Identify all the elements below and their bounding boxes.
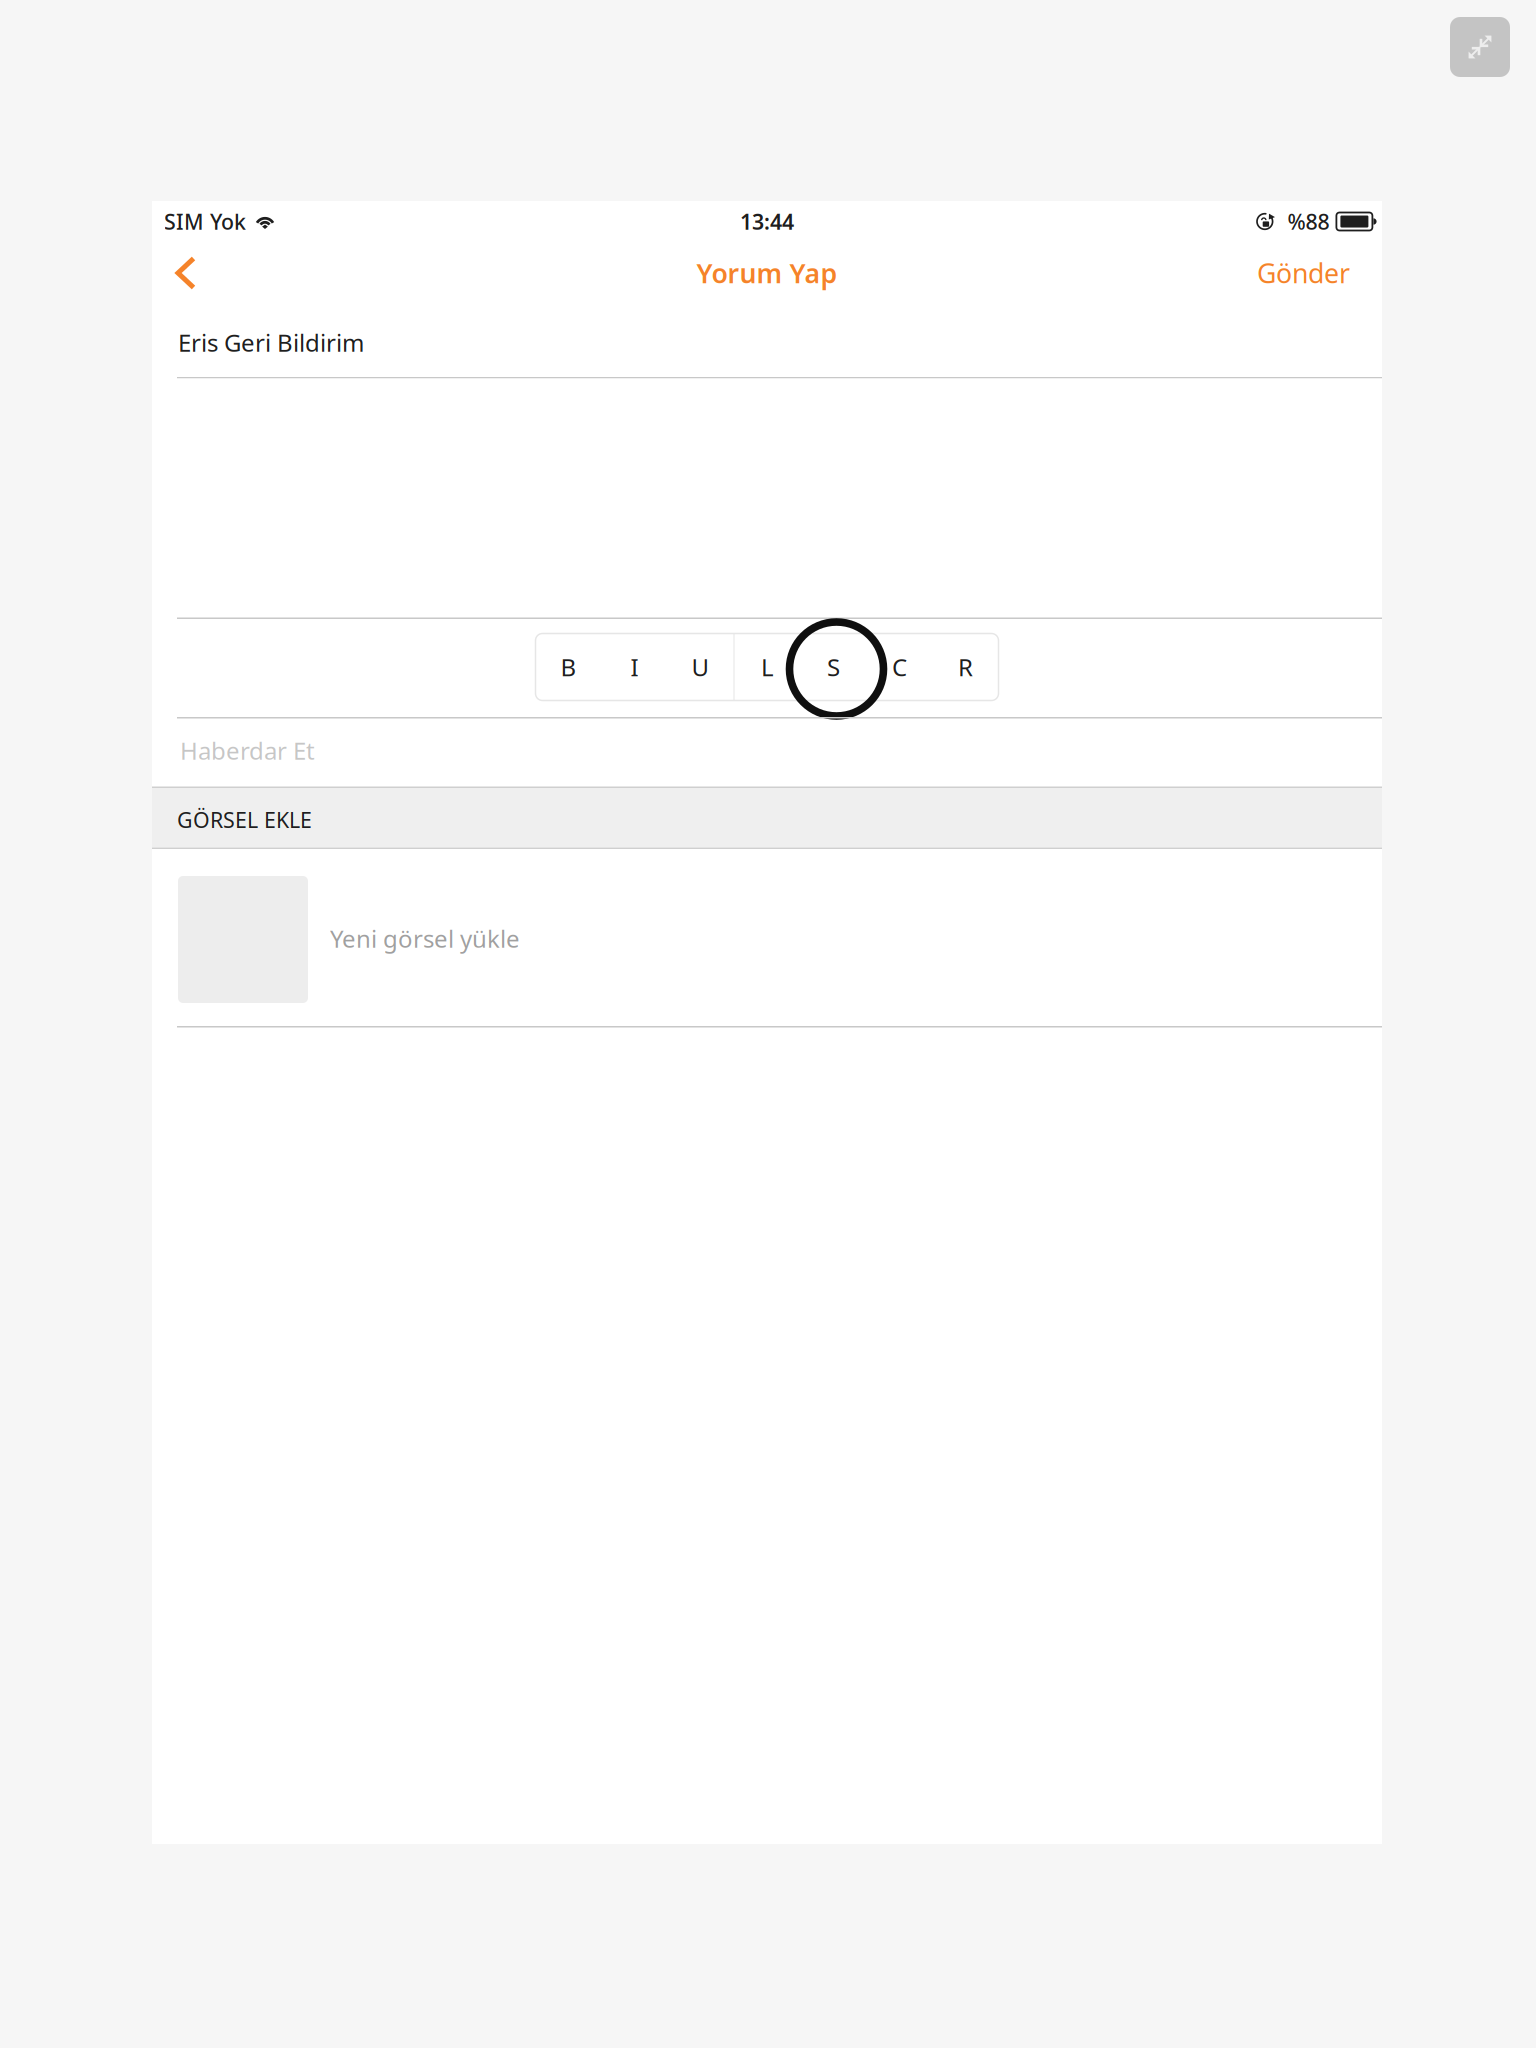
button[interactable]: R xyxy=(932,633,998,700)
staticText: Yeni görsel yükle xyxy=(330,923,520,954)
staticText: S xyxy=(827,651,840,683)
staticText: L xyxy=(761,651,774,683)
staticText: Yorum Yap xyxy=(696,255,837,291)
button[interactable]: I xyxy=(601,633,667,700)
button[interactable]: Yeni görsel yükle xyxy=(152,849,1382,1026)
button[interactable]: Haberdar Et xyxy=(152,718,1382,786)
staticText: Haberdar Et xyxy=(180,735,315,766)
button[interactable]: C xyxy=(866,633,932,700)
staticText: U xyxy=(691,651,709,683)
staticText: Eris Geri Bildirim xyxy=(178,327,364,358)
button[interactable]: Eris Geri Bildirim xyxy=(152,304,1382,377)
button[interactable]: Gönder xyxy=(1249,242,1358,304)
staticText: %88 xyxy=(1287,207,1329,236)
staticText: GÖRSEL EKLE xyxy=(177,806,312,834)
button[interactable]: S xyxy=(800,633,866,700)
button[interactable]: B xyxy=(535,633,601,700)
staticText: R xyxy=(958,651,973,683)
staticText: B xyxy=(560,651,576,683)
staticText: C xyxy=(892,651,907,683)
button[interactable]: L xyxy=(734,633,800,700)
staticText: SIM Yok xyxy=(164,207,246,236)
staticText: I xyxy=(630,651,638,683)
button[interactable]: Back xyxy=(159,242,213,304)
button[interactable]: Collapse xyxy=(1450,17,1510,77)
staticText: Gönder xyxy=(1257,255,1350,291)
button[interactable]: U xyxy=(667,633,733,700)
staticText: 13:44 xyxy=(740,207,794,236)
